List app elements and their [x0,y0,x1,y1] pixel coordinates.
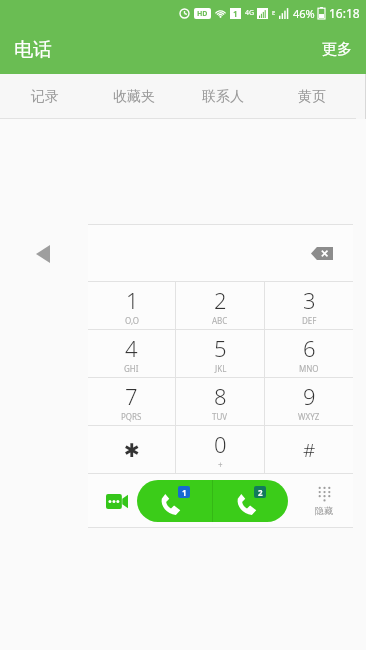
staticText: GHI [124,363,139,374]
button[interactable]: 7 [88,378,175,425]
staticText: 1 [126,285,139,315]
button[interactable]: 2 [176,282,264,329]
button[interactable]: Call with SIM 1 [137,480,212,522]
staticText: 6 [303,333,316,363]
button[interactable]: 隐藏 [303,486,345,516]
button[interactable]: # [265,426,353,473]
staticText: 46% [293,6,315,21]
staticText: # [303,437,316,463]
staticText: PQRS [121,411,142,422]
button[interactable]: 联系人 [178,74,267,119]
button[interactable]: 记录 [0,74,89,119]
staticText: 黄页 [298,88,326,106]
button[interactable]: 9 [265,378,353,425]
staticText: 1 [233,8,238,19]
staticText: 4G [245,8,255,18]
button[interactable]: 1 [88,282,175,329]
staticText: ✱ [124,439,140,461]
button[interactable]: 3 [265,282,353,329]
button[interactable]: Call with SIM 2 [213,480,288,522]
button[interactable]: Video call [100,484,134,518]
staticText: MNO [299,363,319,374]
staticText: ABC [212,315,228,326]
staticText: 记录 [31,88,59,106]
staticText: 2 [258,487,263,498]
button[interactable]: 5 [176,330,264,377]
button[interactable]: 黄页 [267,74,356,119]
button[interactable]: 4 [88,330,175,377]
staticText: 联系人 [202,88,244,106]
staticText: 9 [303,381,316,411]
staticText: 16:18 [329,5,360,21]
staticText: 收藏夹 [113,88,155,106]
staticText: 更多 [322,40,352,59]
staticText: JKL [215,363,227,374]
staticText: 4 [125,333,138,363]
button[interactable]: 0 [176,426,264,473]
staticText: WXYZ [298,411,320,422]
staticText: 8 [214,381,227,411]
staticText: 2 [214,285,227,315]
staticText: 0 [214,429,227,459]
button[interactable]: Back [28,237,58,271]
staticText: 5 [214,333,227,363]
button[interactable]: 6 [265,330,353,377]
button[interactable]: 8 [176,378,264,425]
button[interactable]: 收藏夹 [89,74,178,119]
staticText: 1 [182,487,187,498]
staticText: HD [197,9,208,19]
button[interactable]: 更多 [308,30,366,69]
staticText: TUV [212,411,228,422]
button[interactable]: Backspace [305,240,339,266]
staticText: 3 [303,285,316,315]
button[interactable]: ✱ [88,426,175,473]
staticText: E [272,9,276,17]
staticText: DEF [302,315,317,326]
staticText: 7 [125,381,138,411]
staticText: 电话 [14,38,52,62]
staticText: + [218,459,223,470]
staticText: O,O [125,315,139,326]
staticText: 隐藏 [315,505,333,516]
